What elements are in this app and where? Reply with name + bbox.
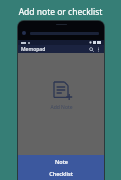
button[interactable]: Add Note	[46, 77, 77, 115]
staticText: Add note or checklist	[0, 6, 121, 18]
staticText: Add Note	[50, 104, 73, 111]
button[interactable]: Checklist	[18, 167, 104, 180]
button[interactable]: Search	[88, 46, 95, 53]
staticText: Checklist	[49, 170, 73, 177]
button[interactable]: More options	[95, 46, 102, 53]
button[interactable]: Note	[18, 155, 104, 167]
staticText: Memopad	[21, 46, 46, 53]
staticText: Note	[55, 158, 68, 165]
